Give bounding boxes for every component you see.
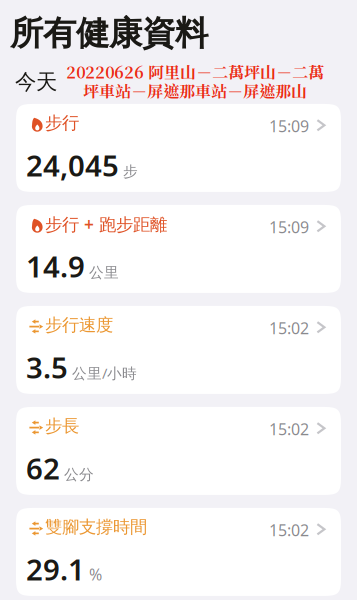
staticText: 所有健康資料	[10, 13, 208, 54]
staticText: 步行 + 跑步距離	[45, 212, 167, 235]
staticText: 15:09	[269, 115, 309, 136]
button[interactable]: 雙腳支撐時間	[16, 508, 341, 596]
button[interactable]: 步長	[16, 407, 341, 495]
staticText: 公里	[89, 264, 119, 282]
staticText: 公里/小時	[72, 363, 137, 383]
button[interactable]: 步行 + 跑步距離	[16, 205, 341, 293]
staticText: %	[89, 564, 102, 585]
staticText: 20220626 阿里山－二萬坪山－二萬 坪車站－屏遮那車站－屏遮那山	[66, 60, 324, 102]
staticText: 步行速度	[45, 314, 113, 336]
staticText: 24,045	[26, 146, 119, 185]
staticText: 今天	[15, 69, 57, 95]
button[interactable]: 步行速度	[16, 306, 341, 394]
staticText: 公分	[64, 466, 94, 484]
staticText: 步	[123, 163, 138, 181]
staticText: 29.1	[26, 550, 85, 589]
staticText: 步長	[45, 415, 79, 437]
staticText: 14.9	[26, 247, 85, 286]
staticText: 15:09	[269, 216, 309, 237]
staticText: 雙腳支撐時間	[45, 516, 147, 538]
button[interactable]: 步行	[16, 104, 341, 192]
staticText: 步行	[45, 112, 79, 134]
staticText: 15:02	[269, 317, 309, 338]
staticText: 62	[26, 449, 60, 488]
staticText: 3.5	[26, 348, 68, 387]
staticText: 15:02	[269, 519, 309, 540]
staticText: 15:02	[269, 418, 309, 439]
